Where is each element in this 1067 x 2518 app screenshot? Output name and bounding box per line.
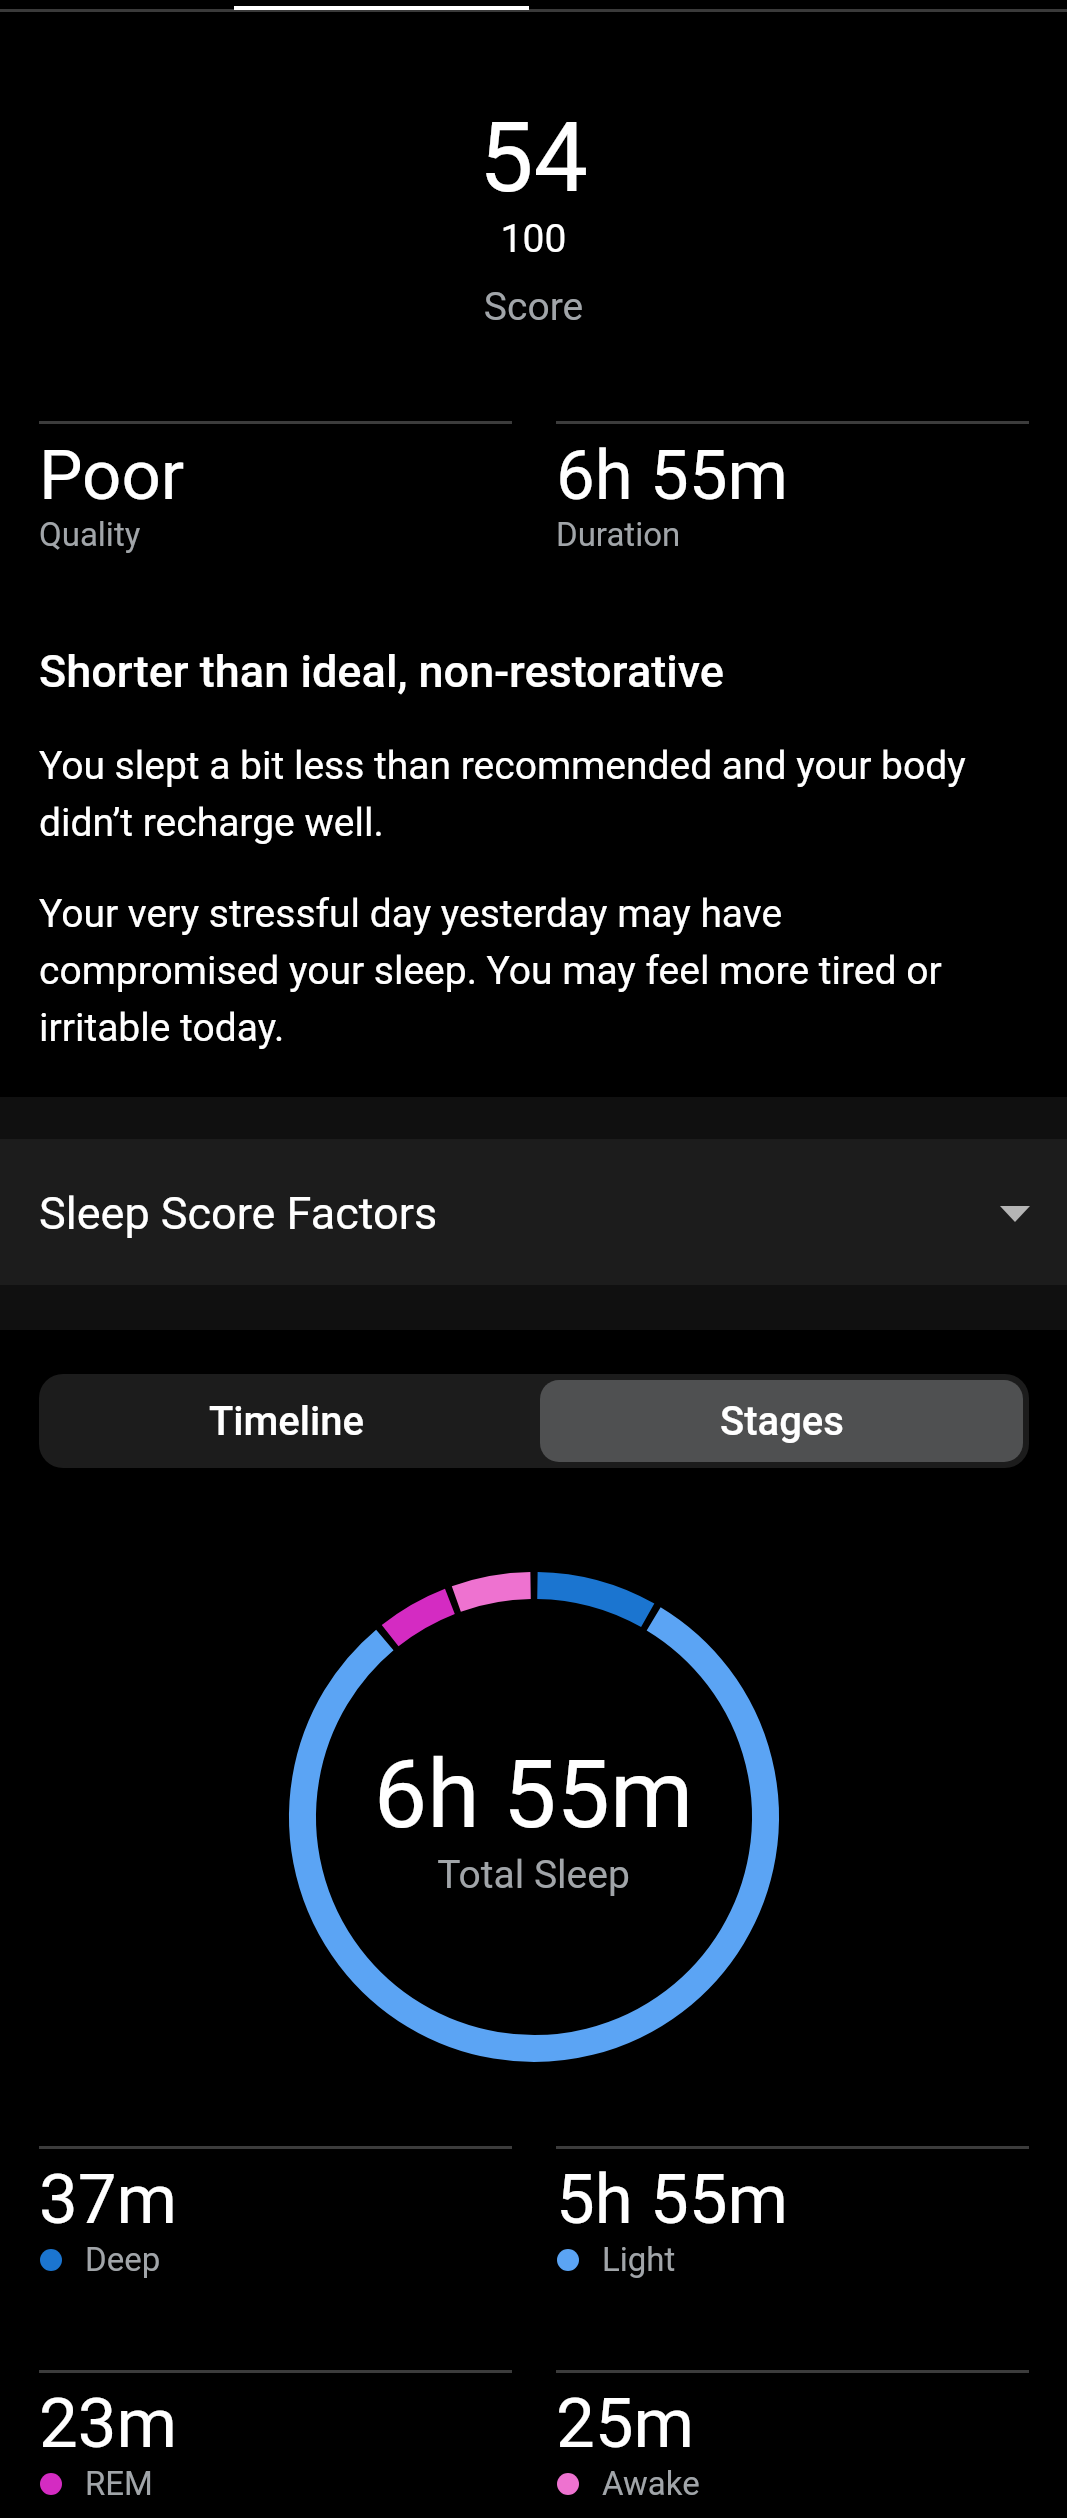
staticText: 23m	[39, 2383, 178, 2464]
staticText: 54	[0, 101, 1067, 215]
button[interactable]: 6h 55m	[556, 421, 1029, 571]
other: Expand Sleep Score Factors	[1000, 1206, 1030, 1222]
staticText: 6h 55m	[556, 435, 788, 516]
staticText: Deep	[85, 2240, 161, 2279]
button[interactable]: Stages	[540, 1380, 1023, 1462]
staticText: Shorter than ideal, non-restorative	[39, 645, 724, 698]
staticText: 100	[0, 216, 1067, 262]
staticText: 25m	[556, 2383, 695, 2464]
staticText: 5h 55m	[556, 2159, 788, 2240]
staticText: Awake	[602, 2464, 700, 2503]
staticText: Score	[0, 284, 1067, 330]
staticText: Duration	[556, 515, 681, 554]
staticText: Stages	[720, 1398, 844, 1445]
staticText: Total Sleep	[0, 1852, 1067, 1898]
staticText: 6h 55m	[0, 1739, 1067, 1850]
staticText: 37m	[39, 2159, 178, 2240]
button[interactable]: 25m	[556, 2370, 1029, 2518]
staticText: Your very stressful day yesterday may ha…	[39, 891, 1028, 1051]
button[interactable]: Poor	[39, 421, 512, 571]
staticText: You slept a bit less than recommended an…	[39, 743, 1028, 846]
button[interactable]: 37m	[39, 2146, 512, 2326]
button[interactable]: Sleep Score Factors	[0, 1139, 1067, 1285]
staticText: Quality	[39, 515, 141, 554]
staticText: Light	[602, 2240, 676, 2279]
button[interactable]: 5h 55m	[556, 2146, 1029, 2326]
staticText: REM	[85, 2464, 153, 2503]
button[interactable]: Timeline	[39, 1374, 534, 1468]
staticText: Timeline	[209, 1398, 364, 1445]
button[interactable]: 23m	[39, 2370, 512, 2518]
staticText: Sleep Score Factors	[39, 1187, 438, 1240]
staticText: Poor	[39, 435, 185, 516]
